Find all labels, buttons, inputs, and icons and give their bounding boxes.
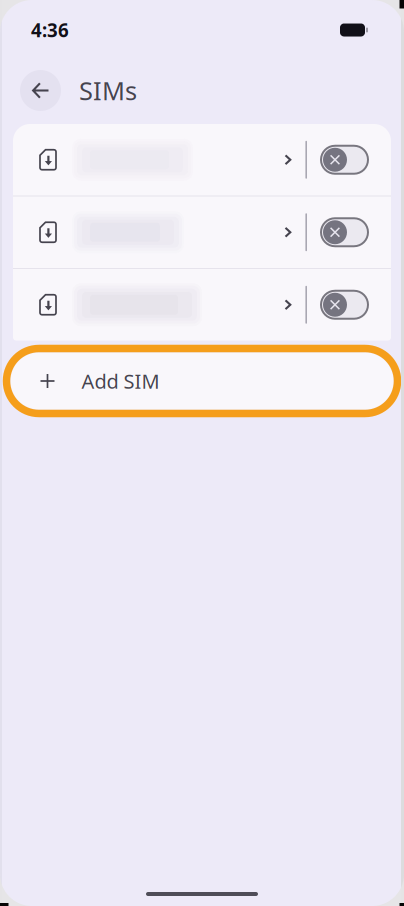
button[interactable]: Add SIM bbox=[0, 348, 404, 413]
button[interactable]: Enable SIM bbox=[307, 124, 391, 195]
staticText: SIMs bbox=[79, 74, 137, 107]
button[interactable]: Enable SIM bbox=[307, 269, 391, 340]
button[interactable] bbox=[13, 269, 305, 340]
staticText: 4:36 bbox=[31, 18, 69, 42]
button[interactable]: Enable SIM bbox=[307, 196, 391, 268]
staticText: Add SIM bbox=[81, 368, 159, 394]
button[interactable] bbox=[13, 196, 305, 268]
button[interactable]: Back bbox=[20, 70, 61, 111]
button[interactable] bbox=[13, 124, 305, 195]
